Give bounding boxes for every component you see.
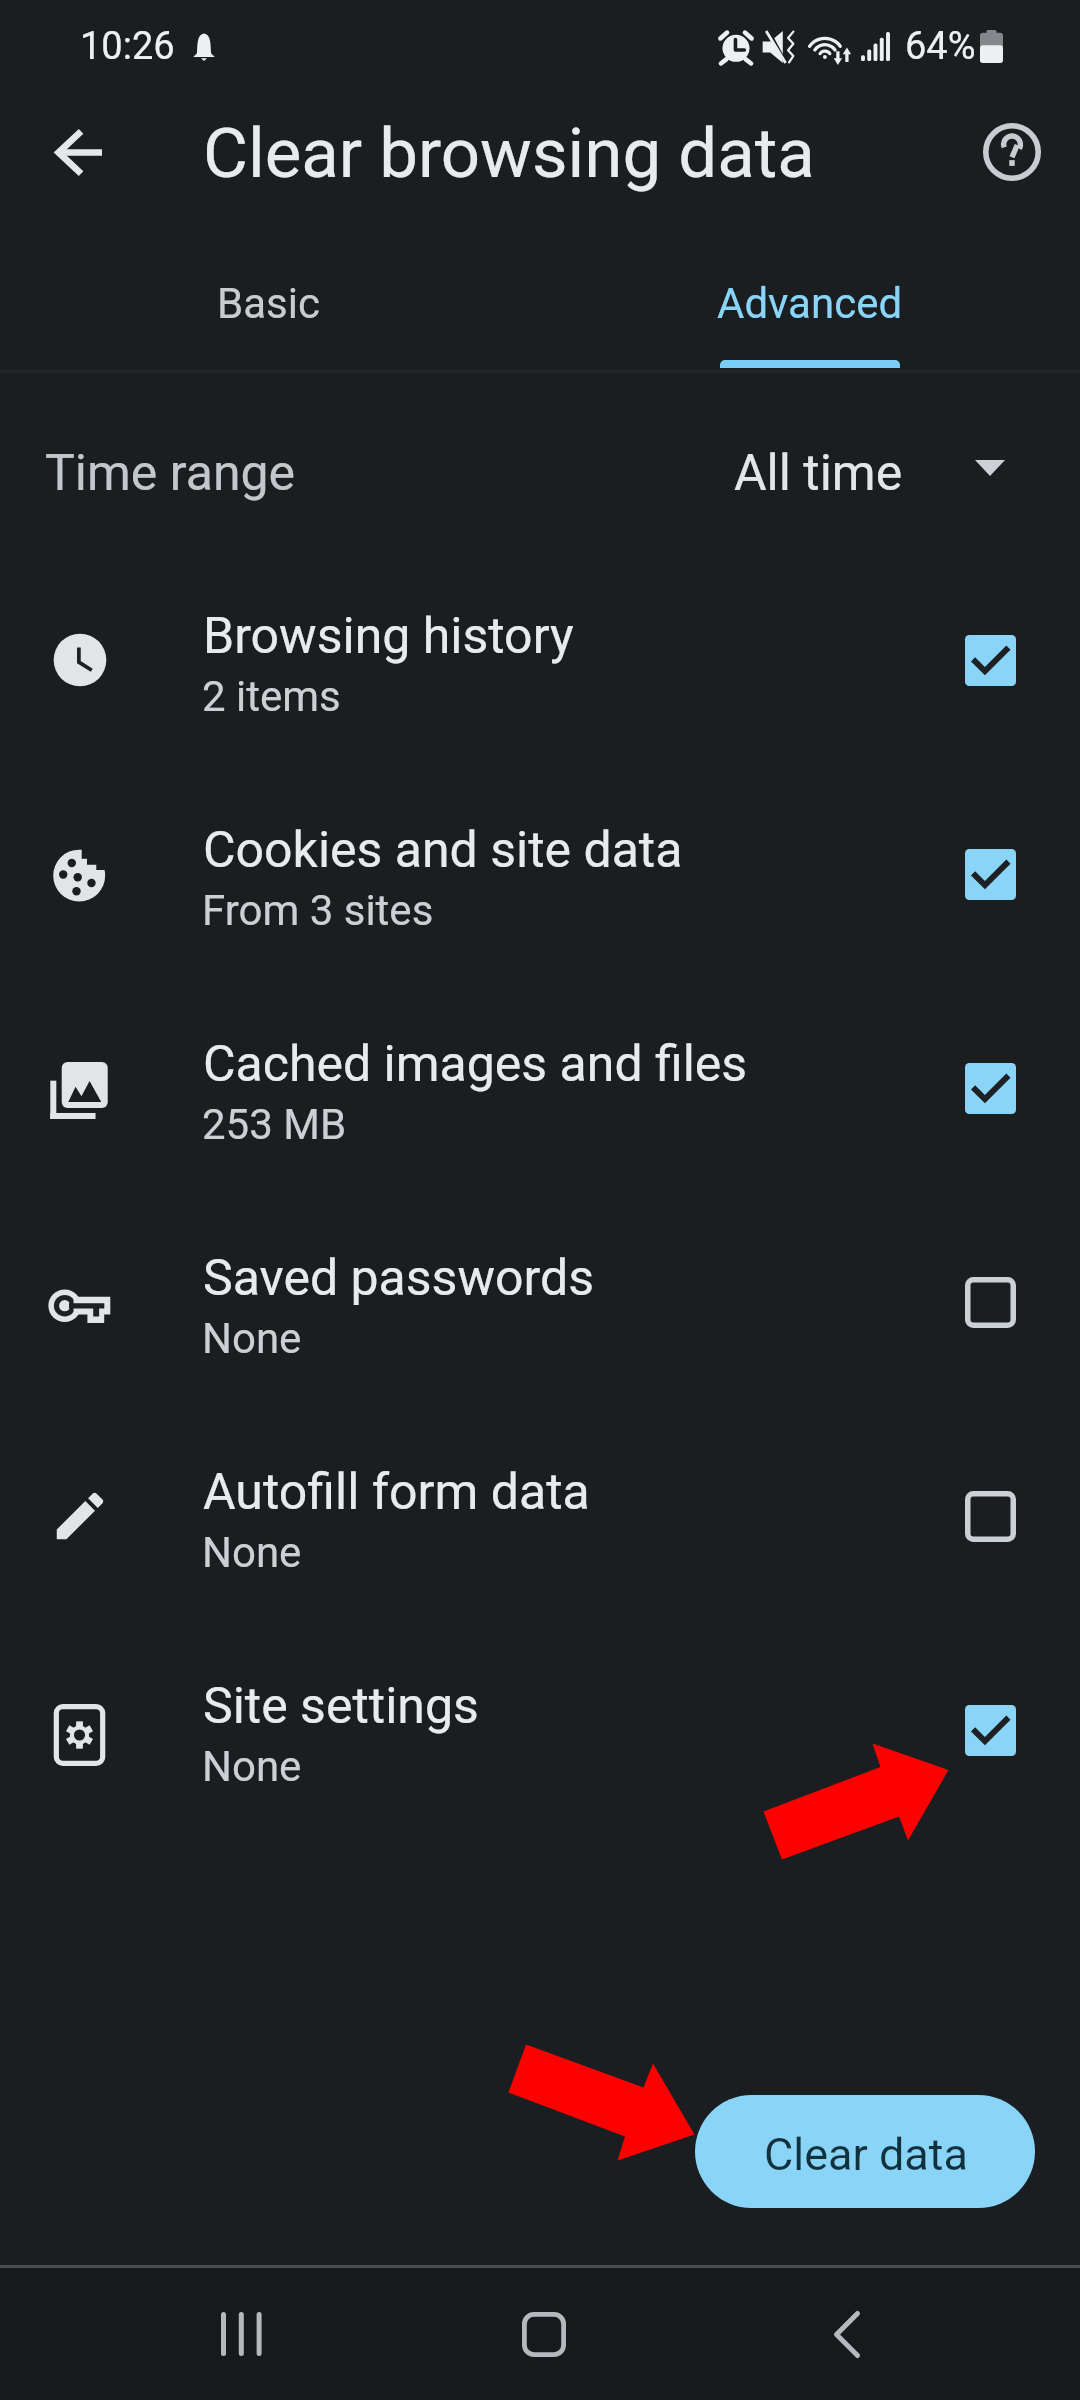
button[interactable]: Cookies and site data <box>0 767 1080 981</box>
staticText: None <box>202 1528 302 1577</box>
button[interactable]: Help & feedback <box>964 104 1060 200</box>
button[interactable]: Time range <box>0 408 1080 538</box>
staticText: Basic <box>217 279 320 328</box>
staticText: 253 MB <box>202 1100 347 1149</box>
button[interactable]: Home <box>481 2268 606 2400</box>
staticText: Time range <box>45 444 296 503</box>
staticText: Cookies and site data <box>203 821 683 880</box>
staticText: Autofill form data <box>203 1463 590 1522</box>
staticText: From 3 sites <box>202 886 434 935</box>
button[interactable]: Advanced <box>540 241 1080 365</box>
button[interactable]: Site settings <box>0 1623 1080 1837</box>
button[interactable]: Recent apps <box>181 2268 306 2400</box>
button[interactable]: Basic <box>0 241 540 365</box>
staticText: Cached images and files <box>203 1035 748 1094</box>
staticText: Advanced <box>717 279 903 328</box>
button[interactable]: Back <box>784 2268 909 2400</box>
staticText: 10:26 <box>80 24 175 69</box>
button[interactable]: Cached images and files <box>0 981 1080 1195</box>
staticText: All time <box>734 444 903 503</box>
staticText: Site settings <box>203 1677 479 1736</box>
button[interactable]: Autofill form data <box>0 1409 1080 1623</box>
staticText: None <box>202 1742 302 1791</box>
staticText: Saved passwords <box>203 1249 594 1308</box>
staticText: None <box>202 1314 302 1363</box>
staticText: Clear data <box>764 2128 969 2181</box>
button[interactable]: Navigate up <box>31 104 127 200</box>
staticText: 64% <box>905 24 976 69</box>
staticText: 2 items <box>202 672 341 721</box>
staticText: Clear browsing data <box>203 113 815 194</box>
button[interactable]: Clear data <box>695 2095 1035 2208</box>
button[interactable]: Browsing history <box>0 553 1080 767</box>
staticText: Browsing history <box>203 607 574 666</box>
button[interactable]: Saved passwords <box>0 1195 1080 1409</box>
